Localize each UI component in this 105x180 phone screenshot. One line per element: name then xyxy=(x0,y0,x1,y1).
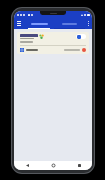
button[interactable]: Toggle xyxy=(76,34,86,39)
button[interactable]: Toggle xyxy=(17,32,89,54)
button[interactable]: Back xyxy=(14,161,40,170)
button[interactable]: Home xyxy=(40,161,66,170)
button[interactable] xyxy=(54,19,85,28)
button[interactable]: Recents xyxy=(66,161,92,170)
button[interactable]: Menu xyxy=(14,19,24,28)
other: Status xyxy=(82,48,86,52)
button[interactable] xyxy=(24,19,54,28)
button[interactable]: More options xyxy=(85,19,92,28)
